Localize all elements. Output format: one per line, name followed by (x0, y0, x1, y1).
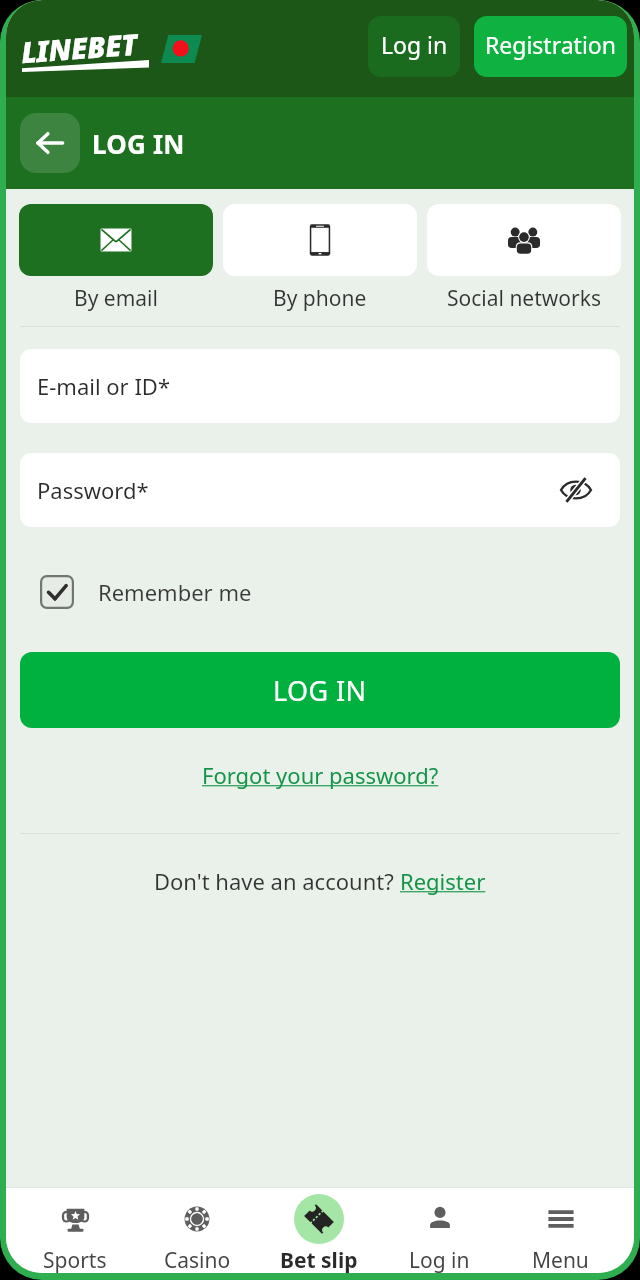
button[interactable]: Forgot your password? (196, 754, 445, 796)
button[interactable]: LOG IN (20, 652, 620, 728)
button[interactable]: Registration (474, 16, 627, 77)
staticText: Log in (409, 1246, 470, 1273)
button[interactable]: Log in (368, 16, 460, 77)
button[interactable]: Casino (136, 1187, 258, 1273)
button[interactable]: By phone (223, 204, 417, 313)
button[interactable]: Log in (379, 1187, 500, 1273)
staticText: LOG IN (273, 672, 367, 709)
button[interactable]: Remember me (20, 575, 620, 609)
staticText: By email (74, 284, 158, 313)
staticText: Sports (43, 1246, 107, 1273)
staticText: Forgot your password? (202, 760, 439, 790)
staticText: Password* (37, 475, 149, 505)
staticText: Menu (532, 1246, 589, 1273)
staticText: Log in (381, 29, 448, 60)
staticText: Social networks (447, 284, 601, 313)
staticText: LINEBET (20, 24, 139, 71)
staticText: Register (400, 866, 486, 896)
button[interactable]: Back (20, 113, 80, 173)
button[interactable]: Password* (20, 453, 620, 527)
button[interactable]: Show password (554, 468, 598, 512)
staticText: By phone (273, 284, 367, 313)
button[interactable]: Bet slip (258, 1187, 379, 1273)
staticText: Don't have an account? (154, 866, 400, 896)
staticText: Remember me (98, 577, 252, 607)
staticText: Casino (164, 1246, 231, 1273)
button[interactable]: E-mail or ID* (20, 349, 620, 423)
button[interactable]: Register (400, 866, 486, 896)
staticText: Registration (485, 29, 616, 60)
staticText: LOG IN (92, 126, 185, 161)
button[interactable]: Menu (500, 1187, 621, 1273)
staticText: E-mail or ID* (37, 371, 171, 401)
staticText: Bet slip (280, 1246, 358, 1273)
button[interactable]: By email (19, 204, 213, 313)
button[interactable]: Sports (14, 1187, 136, 1273)
button[interactable]: Social networks (427, 204, 621, 313)
